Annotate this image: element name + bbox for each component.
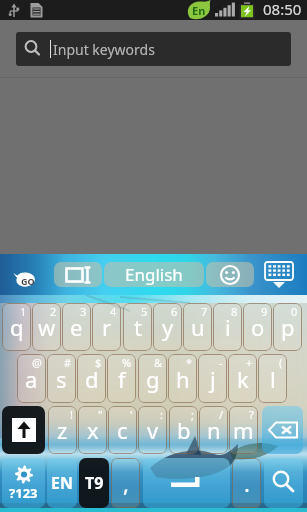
- button[interactable]: Hide keyboard: [262, 262, 296, 288]
- button[interactable]: Symbols: [2, 458, 45, 508]
- staticText: English: [125, 263, 183, 286]
- button[interactable]: t: [123, 303, 152, 351]
- staticText: w: [38, 312, 56, 342]
- button[interactable]: u: [183, 303, 212, 351]
- staticText: .: [244, 468, 250, 498]
- button[interactable]: b: [169, 406, 198, 454]
- staticText: f: [118, 364, 126, 394]
- button[interactable]: Shift: [2, 406, 45, 454]
- staticText: k: [237, 364, 249, 394]
- button[interactable]: English: [104, 262, 204, 287]
- staticText: 08:50: [263, 0, 302, 19]
- staticText: @: [32, 355, 42, 370]
- button[interactable]: Input keywords: [16, 32, 291, 66]
- staticText: 1: [20, 304, 27, 319]
- button[interactable]: ,: [111, 458, 140, 508]
- staticText: z: [57, 415, 68, 445]
- staticText: t: [134, 312, 142, 342]
- button[interactable]: j: [198, 354, 227, 403]
- staticText: 8: [231, 304, 238, 319]
- staticText: u: [191, 312, 205, 342]
- button[interactable]: y: [153, 303, 182, 351]
- button[interactable]: GO Keyboard menu: [12, 270, 40, 290]
- button[interactable]: d: [77, 354, 106, 403]
- staticText: l: [270, 364, 276, 394]
- button[interactable]: s: [47, 354, 76, 403]
- button[interactable]: g: [138, 354, 167, 403]
- staticText: ,: [123, 468, 129, 498]
- staticText: 5: [141, 304, 148, 319]
- button[interactable]: Switch layout: [54, 262, 102, 287]
- staticText: ;: [191, 407, 194, 422]
- button[interactable]: p: [273, 303, 302, 351]
- staticText: n: [207, 415, 221, 445]
- button[interactable]: f: [107, 354, 136, 403]
- staticText: !: [70, 407, 73, 422]
- button[interactable]: a: [17, 354, 46, 403]
- staticText: ': [130, 407, 133, 422]
- staticText: EN: [51, 472, 73, 494]
- staticText: 0: [291, 304, 298, 319]
- staticText: *: [186, 355, 193, 370]
- staticText: Input keywords: [53, 40, 155, 59]
- staticText: /: [219, 407, 224, 422]
- button[interactable]: c: [108, 406, 137, 454]
- button[interactable]: Backspace: [262, 406, 303, 454]
- staticText: s: [56, 364, 67, 394]
- button[interactable]: x: [78, 406, 107, 454]
- button[interactable]: w: [32, 303, 61, 351]
- staticText: i: [225, 312, 231, 342]
- staticText: +: [246, 355, 253, 370]
- button[interactable]: r: [92, 303, 121, 351]
- staticText: :: [160, 407, 163, 422]
- staticText: y: [162, 312, 174, 342]
- staticText: 6: [171, 304, 178, 319]
- staticText: ?123: [9, 484, 38, 502]
- button[interactable]: n: [199, 406, 228, 454]
- staticText: o: [251, 312, 265, 342]
- button[interactable]: Space: [143, 458, 230, 508]
- button[interactable]: i: [213, 303, 242, 351]
- button[interactable]: m: [229, 406, 258, 454]
- staticText: d: [85, 364, 99, 394]
- staticText: ": [98, 407, 103, 422]
- staticText: 9: [261, 304, 268, 319]
- staticText: m: [233, 415, 254, 445]
- staticText: v: [147, 415, 159, 445]
- button[interactable]: Search: [264, 458, 303, 508]
- staticText: b: [177, 415, 191, 445]
- button[interactable]: Emoji: [206, 262, 254, 287]
- staticText: #: [64, 355, 72, 370]
- button[interactable]: k: [228, 354, 257, 403]
- button[interactable]: o: [243, 303, 272, 351]
- staticText: 4: [110, 304, 117, 319]
- button[interactable]: e: [62, 303, 91, 351]
- staticText: 7: [201, 304, 208, 319]
- staticText: -: [219, 355, 223, 370]
- staticText: En: [192, 3, 206, 18]
- staticText: ?: [249, 407, 254, 422]
- staticText: x: [87, 415, 99, 445]
- staticText: r: [102, 312, 112, 342]
- button[interactable]: l: [258, 354, 287, 403]
- staticText: (: [279, 355, 283, 370]
- staticText: c: [117, 415, 128, 445]
- staticText: h: [176, 364, 190, 394]
- button[interactable]: .: [232, 458, 261, 508]
- staticText: $: [95, 355, 102, 370]
- staticText: g: [146, 364, 160, 394]
- staticText: j: [210, 364, 216, 394]
- button[interactable]: z: [48, 406, 77, 454]
- staticText: a: [25, 364, 38, 394]
- staticText: &: [154, 355, 163, 370]
- staticText: p: [281, 312, 295, 342]
- button[interactable]: h: [168, 354, 197, 403]
- button[interactable]: q: [2, 303, 31, 351]
- staticText: q: [10, 312, 24, 342]
- staticText: 3: [80, 304, 87, 319]
- staticText: %: [122, 355, 132, 370]
- button[interactable]: Language: [47, 458, 77, 508]
- button[interactable]: v: [138, 406, 167, 454]
- button[interactable]: T9: [79, 458, 109, 508]
- staticText: T9: [85, 472, 104, 494]
